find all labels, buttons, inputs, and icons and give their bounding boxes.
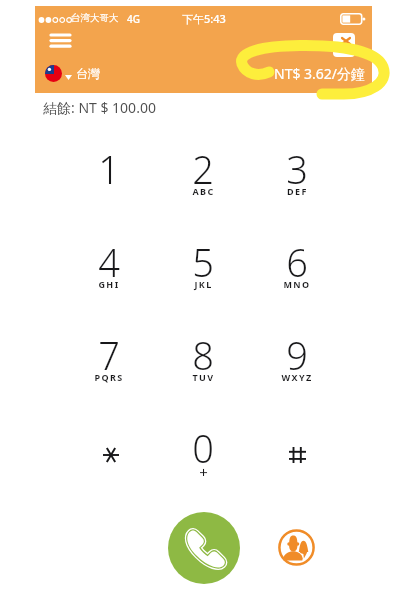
button[interactable]: 9 bbox=[257, 329, 337, 401]
staticText: WXYZ bbox=[281, 371, 313, 383]
staticText: 結餘: NT $ 100.00 bbox=[43, 98, 156, 117]
button[interactable]: 4 bbox=[69, 236, 149, 308]
staticText: 8 bbox=[192, 329, 214, 381]
button[interactable]: Contacts bbox=[278, 529, 315, 566]
button[interactable]: Close bbox=[333, 33, 355, 57]
button[interactable]: 2 bbox=[163, 143, 243, 215]
button[interactable]: 3 bbox=[257, 143, 337, 215]
staticText: 3 bbox=[286, 143, 308, 195]
button[interactable]: 6 bbox=[257, 236, 337, 308]
button[interactable]: Call bbox=[168, 512, 240, 584]
staticText: 6 bbox=[286, 236, 308, 288]
staticText: 9 bbox=[286, 329, 308, 381]
staticText: MNO bbox=[283, 278, 311, 290]
staticText: 7 bbox=[98, 329, 120, 381]
staticText: DEF bbox=[287, 185, 308, 197]
staticText: 0 bbox=[192, 422, 214, 474]
staticText: 下午5:43 bbox=[182, 11, 226, 26]
button[interactable]: 1 bbox=[69, 143, 149, 215]
staticText: + bbox=[199, 462, 208, 482]
staticText: 5 bbox=[192, 236, 214, 288]
staticText: ABC bbox=[192, 185, 215, 197]
button[interactable]: 5 bbox=[163, 236, 243, 308]
button[interactable]: 0 bbox=[163, 422, 243, 494]
button[interactable]: 7 bbox=[69, 329, 149, 401]
staticText: JKL bbox=[194, 278, 213, 290]
staticText: NT$ 3.62/分鐘 bbox=[274, 64, 366, 83]
button[interactable] bbox=[257, 422, 337, 494]
staticText: TUV bbox=[192, 371, 215, 383]
staticText: 2 bbox=[192, 143, 214, 195]
staticText: PQRS bbox=[94, 371, 124, 383]
staticText: 4 bbox=[98, 236, 120, 288]
button[interactable]: Menu bbox=[45, 28, 79, 54]
staticText: 台灣 bbox=[76, 66, 100, 81]
button[interactable] bbox=[69, 422, 149, 494]
button[interactable]: 8 bbox=[163, 329, 243, 401]
button[interactable]: 台灣 bbox=[45, 64, 100, 83]
staticText: 1 bbox=[98, 143, 120, 195]
staticText: GHI bbox=[98, 278, 120, 290]
staticText: 4G bbox=[127, 12, 140, 26]
staticText: 台湾大哥大 bbox=[71, 12, 119, 24]
